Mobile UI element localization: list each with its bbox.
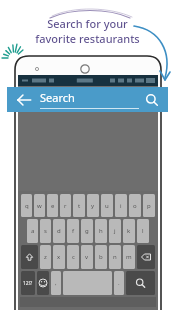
button[interactable]: j	[109, 219, 121, 243]
button[interactable]: shift	[21, 245, 38, 269]
button[interactable]: z	[40, 245, 51, 269]
staticText: q	[25, 202, 29, 210]
button[interactable]: backspace	[137, 245, 155, 269]
staticText: favorite restaurants	[35, 31, 140, 46]
staticText: u	[105, 202, 109, 210]
staticText: s	[44, 227, 47, 235]
staticText: d	[57, 227, 61, 235]
staticText: f	[72, 227, 75, 235]
staticText: i	[120, 202, 122, 210]
button[interactable]: .	[114, 271, 124, 295]
button[interactable]: t	[73, 194, 85, 217]
staticText: x	[57, 253, 61, 261]
staticText: b	[99, 253, 103, 261]
button[interactable]: h	[95, 219, 107, 243]
button[interactable]: a	[27, 219, 38, 243]
button[interactable]: q	[21, 194, 32, 217]
button[interactable]: l	[137, 219, 149, 243]
button[interactable]: k	[123, 219, 135, 243]
staticText: n	[113, 253, 117, 261]
button[interactable]: x	[53, 245, 65, 269]
button[interactable]: num	[21, 271, 35, 295]
button[interactable]: ,	[51, 271, 61, 295]
staticText: m	[126, 253, 132, 261]
staticText: .	[118, 279, 120, 287]
button[interactable]: c	[67, 245, 79, 269]
staticText: l	[142, 227, 144, 235]
button[interactable]: v	[81, 245, 93, 269]
staticText: Search	[40, 90, 75, 105]
staticText: o	[133, 202, 137, 210]
button[interactable]: n	[109, 245, 121, 269]
staticText: z	[44, 253, 47, 261]
button[interactable]: y	[87, 194, 99, 217]
button[interactable]: g	[81, 219, 93, 243]
staticText: k	[127, 227, 131, 235]
button[interactable]: e	[47, 194, 58, 217]
button[interactable]: Search	[145, 93, 159, 107]
button[interactable]: w	[34, 194, 45, 217]
staticText: r	[64, 202, 67, 210]
staticText: p	[147, 202, 151, 210]
button[interactable]: d	[53, 219, 65, 243]
button[interactable]: f	[67, 219, 79, 243]
staticText: v	[85, 253, 89, 261]
button[interactable]: u	[101, 194, 113, 217]
button[interactable]: Back	[7, 87, 168, 112]
button[interactable]: s	[40, 219, 51, 243]
staticText: j	[114, 227, 116, 235]
staticText: Search for your	[47, 16, 128, 31]
button[interactable]: r	[60, 194, 71, 217]
button[interactable]: o	[129, 194, 141, 217]
staticText: t	[78, 202, 81, 210]
staticText: e	[51, 202, 55, 210]
staticText: c	[72, 253, 75, 261]
staticText: 12!?	[23, 280, 33, 287]
staticText: g	[85, 227, 89, 235]
staticText: ,	[55, 279, 57, 287]
button[interactable]: b	[95, 245, 107, 269]
staticText: a	[31, 227, 35, 235]
button[interactable]: i	[115, 194, 127, 217]
staticText: y	[91, 202, 95, 210]
staticText: w	[37, 202, 42, 210]
button[interactable]: m	[123, 245, 135, 269]
button[interactable]: p	[143, 194, 155, 217]
staticText: h	[99, 227, 103, 235]
button[interactable]: emoji	[37, 271, 49, 295]
button[interactable]: go	[126, 271, 155, 295]
button[interactable]: Back	[16, 92, 32, 108]
